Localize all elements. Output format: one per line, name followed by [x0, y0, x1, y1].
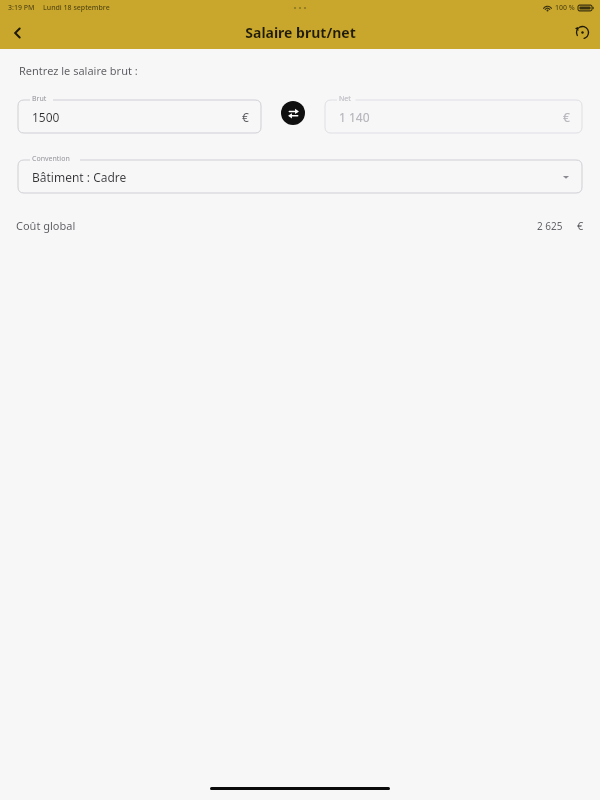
staticText: Brut — [32, 94, 47, 104]
button[interactable]: Net — [325, 93, 582, 133]
staticText: Coût global — [16, 218, 76, 233]
button[interactable]: Back — [0, 16, 36, 49]
button[interactable]: Convention — [18, 153, 582, 193]
staticText: € — [563, 109, 570, 125]
button[interactable]: History — [564, 16, 600, 49]
button[interactable]: Brut — [18, 93, 261, 133]
staticText: € — [242, 109, 249, 125]
staticText: Salaire brut/net — [245, 23, 356, 42]
staticText: 100 % — [555, 3, 575, 13]
staticText: 3:19 PM — [8, 3, 35, 13]
button[interactable]: Swap brut and net — [281, 101, 305, 125]
staticText: Net — [339, 94, 351, 104]
staticText: 1 140 — [339, 109, 370, 125]
staticText: Lundi 18 septembre — [43, 3, 110, 13]
staticText: 1500 — [32, 109, 60, 125]
staticText: 2 625 — [537, 219, 563, 233]
staticText: Rentrez le salaire brut : — [19, 63, 138, 78]
staticText: € — [577, 218, 584, 233]
staticText: Convention — [32, 154, 70, 164]
staticText: Bâtiment : Cadre — [32, 169, 127, 185]
